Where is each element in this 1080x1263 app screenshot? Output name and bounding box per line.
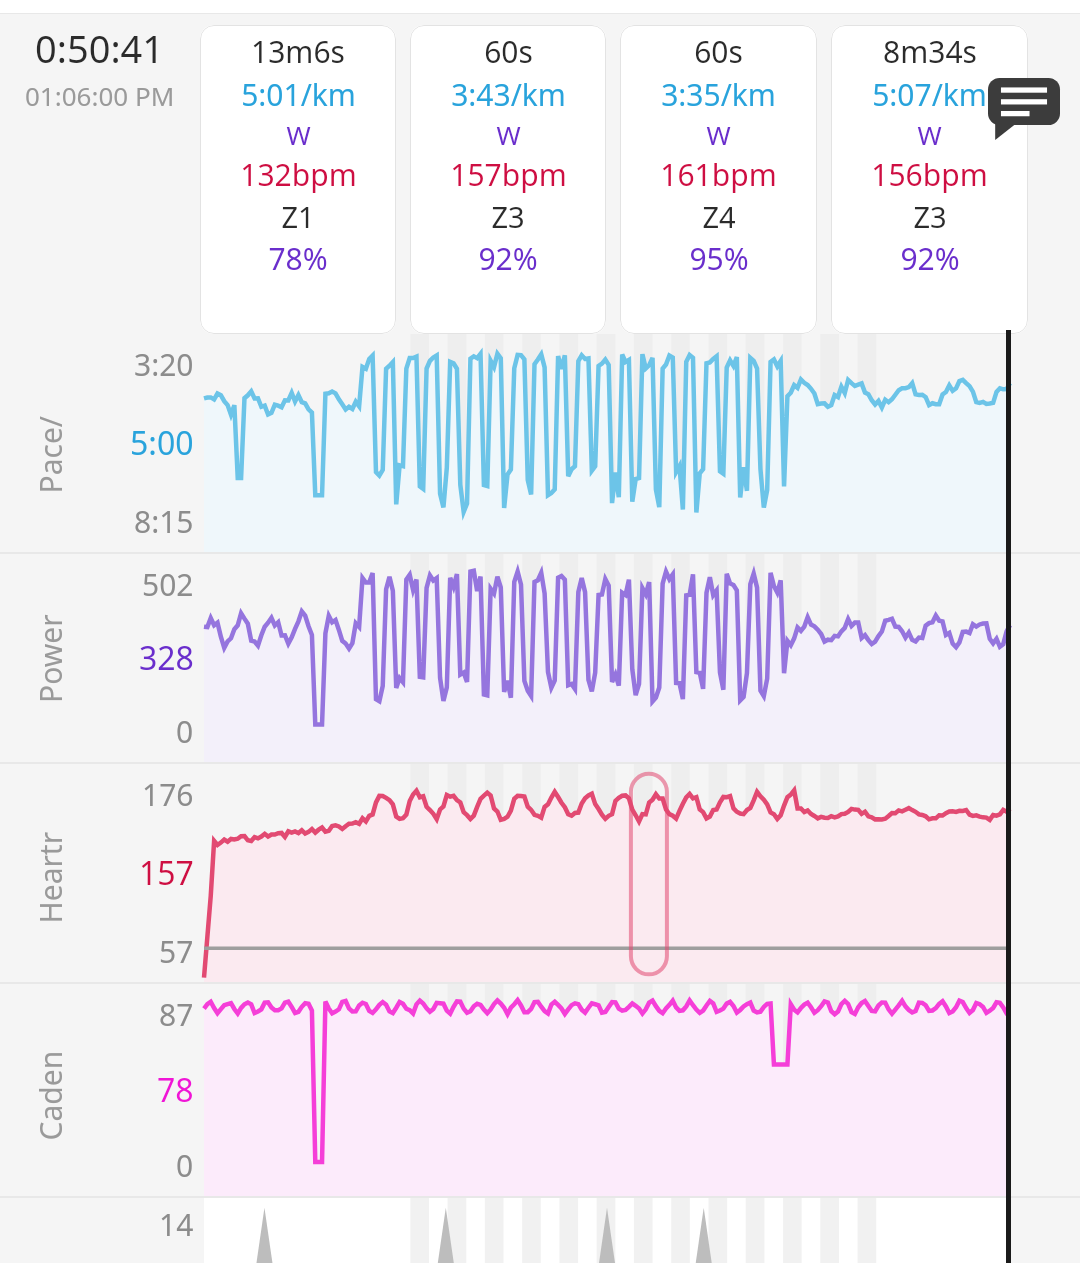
staticText: 5:01/km <box>241 74 356 115</box>
staticText: 8:15 <box>134 501 194 542</box>
staticText: 92% <box>478 238 538 279</box>
staticText: 14 <box>159 1204 194 1245</box>
staticText: 3:35/km <box>661 74 776 115</box>
staticText: W <box>917 117 942 152</box>
staticText: 95% <box>689 238 749 279</box>
staticText: 157 <box>139 851 194 895</box>
staticText: 92% <box>900 238 960 279</box>
staticText: 78 <box>157 1068 194 1112</box>
staticText: 132bpm <box>240 154 357 195</box>
staticText: 502 <box>142 564 194 605</box>
staticText: 0:50:41 <box>35 22 165 74</box>
button[interactable]: 8m34s <box>831 25 1028 334</box>
staticText: Heartrate <box>29 823 70 923</box>
staticText: 01:06:00 PM <box>25 78 175 113</box>
staticText: 13m6s <box>251 31 345 72</box>
staticText: Z3 <box>491 197 525 236</box>
staticText: 157bpm <box>450 154 567 195</box>
staticText: 8m34s <box>883 31 977 72</box>
staticText: 60s <box>694 31 743 72</box>
staticText: 78% <box>268 238 328 279</box>
button[interactable]: 60s <box>410 25 606 334</box>
staticText: W <box>286 117 311 152</box>
staticText: Pace/km <box>29 393 70 493</box>
staticText: 3:43/km <box>451 74 566 115</box>
staticText: 0 <box>176 1145 194 1186</box>
staticText: W <box>706 117 731 152</box>
staticText: 328 <box>139 636 194 680</box>
staticText: Power <box>30 614 71 703</box>
button[interactable]: 13m6s <box>200 25 396 334</box>
staticText: 57 <box>159 931 194 972</box>
staticText: Z3 <box>913 197 947 236</box>
staticText: 5:07/km <box>872 74 987 115</box>
staticText: W <box>496 117 521 152</box>
staticText: Cadence <box>29 1040 70 1140</box>
staticText: 161bpm <box>660 154 777 195</box>
button[interactable]: 60s <box>620 25 817 334</box>
staticText: 60s <box>484 31 533 72</box>
staticText: Z4 <box>702 197 736 236</box>
staticText: Z1 <box>281 197 315 236</box>
staticText: 0 <box>176 711 194 752</box>
staticText: 156bpm <box>871 154 988 195</box>
staticText: 5:00 <box>130 421 194 465</box>
button[interactable]: Notes <box>988 78 1060 140</box>
staticText: 3:20 <box>134 344 194 385</box>
staticText: 87 <box>159 994 194 1035</box>
staticText: 176 <box>142 774 194 815</box>
